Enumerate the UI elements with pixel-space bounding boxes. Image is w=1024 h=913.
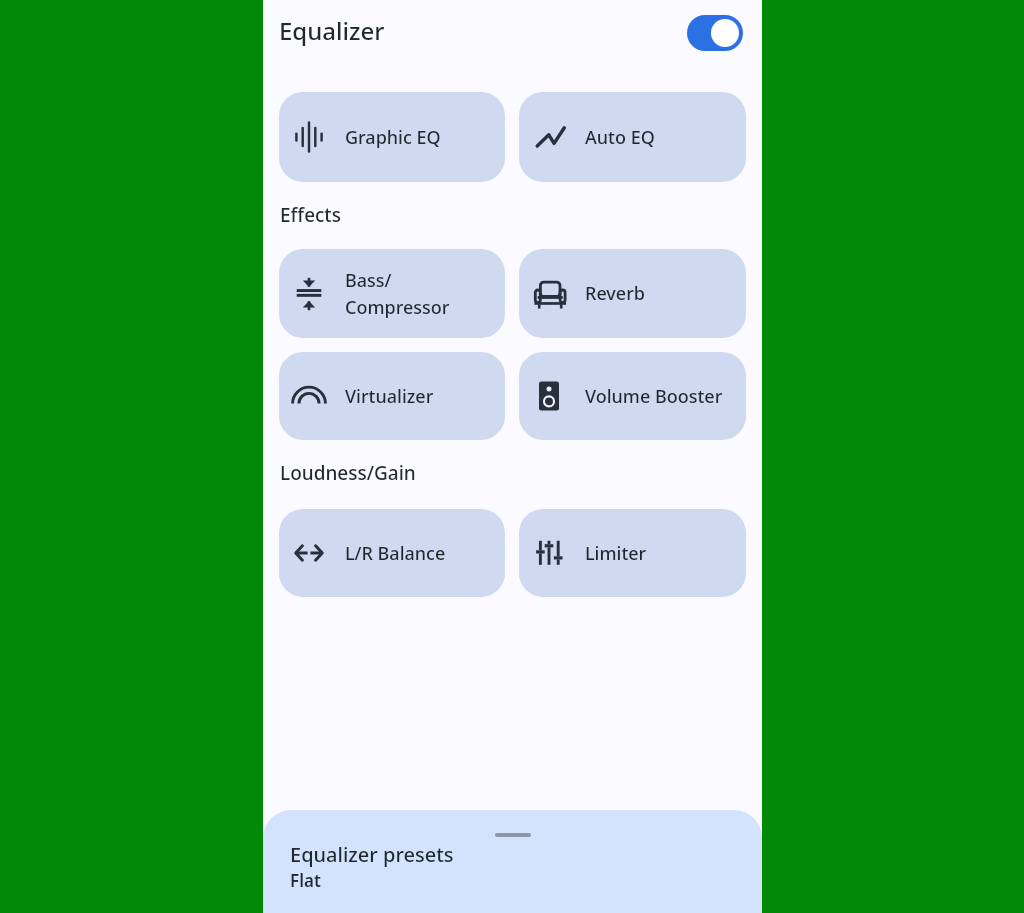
button[interactable]: Equalizer presets: Flat xyxy=(263,810,762,913)
staticText: Virtualizer xyxy=(345,384,434,409)
staticText: Graphic EQ xyxy=(345,125,441,150)
staticText: L/R Balance xyxy=(345,541,446,566)
staticText: Equalizer presets xyxy=(290,841,454,868)
staticText: Limiter xyxy=(585,541,647,566)
staticText: Bass/ Compressor xyxy=(345,268,450,319)
button[interactable]: L/R Balance xyxy=(279,509,505,597)
button[interactable]: Virtualizer xyxy=(279,352,505,440)
staticText: Auto EQ xyxy=(585,125,655,150)
button[interactable]: Equalizer on xyxy=(687,15,743,51)
staticText: Volume Booster xyxy=(585,384,723,409)
staticText: Effects xyxy=(280,202,341,228)
button[interactable]: Auto EQ xyxy=(519,92,746,182)
staticText: Flat xyxy=(290,869,321,892)
staticText: Loudness/Gain xyxy=(280,460,416,486)
button[interactable]: Volume Booster xyxy=(519,352,746,440)
button[interactable]: Graphic EQ xyxy=(279,92,505,182)
staticText: Reverb xyxy=(585,281,645,306)
button[interactable]: Reverb xyxy=(519,249,746,338)
button[interactable]: Bass/ Compressor xyxy=(279,249,505,338)
staticText: Equalizer xyxy=(279,14,385,47)
button[interactable]: Limiter xyxy=(519,509,746,597)
